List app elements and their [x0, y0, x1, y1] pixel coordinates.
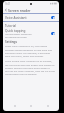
- staticText: If you turned Voice Assistant on by mist…: [5, 60, 55, 75]
- button[interactable]: Home: [26, 102, 36, 110]
- staticText: Screen reader: [8, 8, 31, 13]
- staticText: Use two fingers double tap for tapping t…: [5, 33, 32, 38]
- staticText: When Voice Assistant is on, your device …: [5, 45, 55, 57]
- staticText: Settings: [5, 40, 18, 44]
- staticText: Quick tapping: [5, 29, 26, 33]
- button[interactable]: Voice Assistant: [3, 14, 59, 21]
- button[interactable]: Tutorial: [3, 22, 59, 29]
- staticText: Tutorial: [5, 24, 17, 28]
- button[interactable]: Quick tapping: [3, 29, 59, 38]
- button[interactable]: Recents: [43, 102, 53, 110]
- staticText: Voice Assistant: [5, 16, 27, 20]
- button[interactable]: Back: [10, 102, 20, 110]
- button[interactable]: Back: [3, 7, 8, 13]
- staticText: 9:41: [5, 2, 11, 6]
